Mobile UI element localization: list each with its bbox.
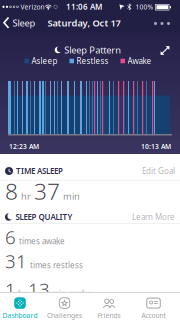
staticText: Sleep xyxy=(12,17,35,29)
staticText: hr xyxy=(21,190,31,202)
staticText: 100% xyxy=(135,2,153,11)
staticText: min awake xyxy=(52,288,91,299)
staticText: times restless xyxy=(30,260,83,270)
staticText: Edit Goal xyxy=(142,166,175,176)
button[interactable]: Account xyxy=(131,295,175,320)
staticText: Saturday, Oct 17 xyxy=(47,17,120,29)
staticText: Learn More xyxy=(132,212,175,222)
staticText: Awake xyxy=(127,56,151,66)
staticText: SLEEP QUALITY xyxy=(15,212,72,222)
button[interactable]: Expand chart xyxy=(158,43,172,57)
staticText: Friends xyxy=(97,311,120,320)
staticText: 31 xyxy=(5,249,27,273)
staticText: 37 xyxy=(34,176,60,206)
staticText: 10:13 AM xyxy=(141,142,171,151)
staticText: Dashboard xyxy=(2,311,37,320)
staticText: Verizon xyxy=(20,2,44,11)
staticText: Sleep Pattern xyxy=(64,44,121,56)
staticText: 8 xyxy=(5,176,18,206)
button[interactable]: Dashboard xyxy=(0,295,42,320)
staticText: Challenges xyxy=(47,311,82,320)
button[interactable]: Edit Goal xyxy=(142,166,175,176)
staticText: times awake xyxy=(19,236,65,246)
staticText: Asleep xyxy=(31,56,57,66)
staticText: 11:06 AM xyxy=(66,1,102,12)
button[interactable]: More options xyxy=(152,18,172,28)
button[interactable]: Sleep xyxy=(0,14,42,32)
staticText: min xyxy=(63,190,80,202)
staticText: Restless xyxy=(76,56,108,66)
staticText: 12:23 AM xyxy=(9,142,39,151)
staticText: 6 xyxy=(5,225,16,249)
staticText: TIME ASLEEP xyxy=(16,166,63,176)
staticText: Account xyxy=(141,311,165,320)
button[interactable]: Friends xyxy=(87,295,131,320)
button[interactable]: Challenges xyxy=(42,295,86,320)
staticText: hr xyxy=(18,288,26,299)
staticText: 1 xyxy=(5,277,16,302)
staticText: 13 xyxy=(28,277,50,302)
button[interactable]: Learn More xyxy=(132,212,175,222)
